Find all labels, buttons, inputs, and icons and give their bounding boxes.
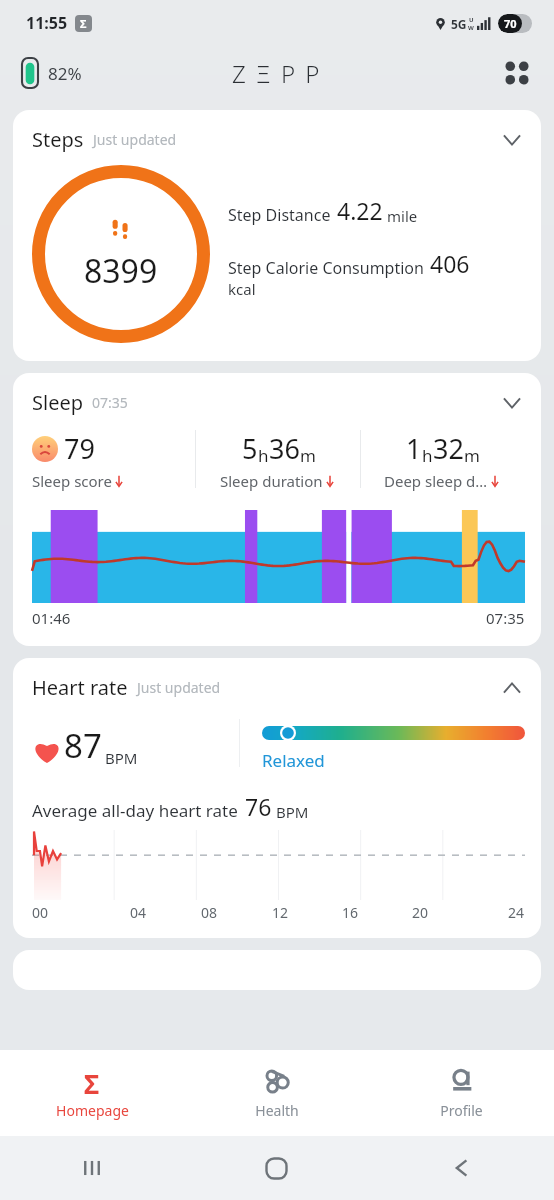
button[interactable]: Steps xyxy=(13,110,541,361)
staticText: 82% xyxy=(48,62,82,85)
staticText: 36 xyxy=(269,430,300,467)
staticText: m xyxy=(464,444,480,467)
staticText: Sleep duration xyxy=(220,471,323,491)
button[interactable]: Health xyxy=(184,1050,369,1136)
staticText: 5 xyxy=(242,430,258,467)
staticText: mile xyxy=(387,206,418,226)
staticText: Z Ξ P P xyxy=(232,57,322,90)
staticText: 12 xyxy=(272,903,289,922)
staticText: Just updated xyxy=(93,130,177,149)
staticText: BPM xyxy=(105,748,138,768)
staticText: Average all-day heart rate xyxy=(32,799,238,822)
button[interactable]: Apps xyxy=(498,54,536,92)
button[interactable]: Heart rate xyxy=(32,674,525,701)
staticText: BPM xyxy=(276,802,309,822)
staticText: 70 xyxy=(504,16,517,31)
button[interactable]: Σ xyxy=(0,1050,184,1136)
staticText: 00 xyxy=(32,903,49,922)
staticText: Profile xyxy=(440,1101,483,1120)
staticText: h xyxy=(258,444,269,467)
staticText: 79 xyxy=(64,430,95,467)
staticText: kcal xyxy=(228,279,256,299)
staticText: 04 xyxy=(130,903,147,922)
staticText: 32 xyxy=(433,430,464,467)
staticText: 24 xyxy=(508,903,525,922)
staticText: U xyxy=(469,16,474,24)
staticText: Relaxed xyxy=(262,749,325,772)
staticText: Homepage xyxy=(56,1101,129,1120)
staticText: 07:35 xyxy=(486,608,525,628)
staticText: 08 xyxy=(201,903,218,922)
staticText: W xyxy=(468,24,474,32)
staticText: Steps xyxy=(32,126,84,153)
staticText: 87 xyxy=(64,723,102,768)
staticText: h xyxy=(422,444,433,467)
staticText: 20 xyxy=(412,903,429,922)
button[interactable]: Sleep xyxy=(32,389,525,416)
staticText: 1 xyxy=(406,430,422,467)
staticText: 01:46 xyxy=(32,608,71,628)
staticText: 5G xyxy=(451,16,467,32)
staticText: Sleep xyxy=(32,389,83,416)
staticText: 16 xyxy=(342,903,359,922)
staticText: Σ xyxy=(80,16,87,31)
staticText: 76 xyxy=(245,791,272,822)
button[interactable]: Steps xyxy=(32,126,525,153)
button[interactable]: Sleep xyxy=(13,373,541,646)
staticText: Just updated xyxy=(137,678,221,697)
staticText: Step Calorie Consumption xyxy=(228,257,424,279)
button[interactable]: Device battery 82 percent xyxy=(22,58,82,88)
staticText: 4.22 xyxy=(337,195,383,226)
staticText: m xyxy=(300,444,316,467)
staticText: 07:35 xyxy=(92,393,128,412)
staticText: Deep sleep d… xyxy=(384,471,488,491)
staticText: Health xyxy=(255,1101,299,1120)
other: Expand xyxy=(499,127,525,153)
other: Expand xyxy=(499,390,525,416)
staticText: Sleep score xyxy=(32,471,112,491)
staticText: Heart rate xyxy=(32,674,128,701)
staticText: 11:55 xyxy=(26,12,68,34)
button[interactable]: Profile xyxy=(369,1050,554,1136)
staticText: Step Distance xyxy=(228,204,331,226)
button[interactable]: Heart rate xyxy=(13,658,541,938)
staticText: 8399 xyxy=(84,249,158,293)
staticText: Σ xyxy=(84,1066,100,1096)
other: Collapse xyxy=(499,675,525,701)
staticText: 406 xyxy=(430,248,470,279)
